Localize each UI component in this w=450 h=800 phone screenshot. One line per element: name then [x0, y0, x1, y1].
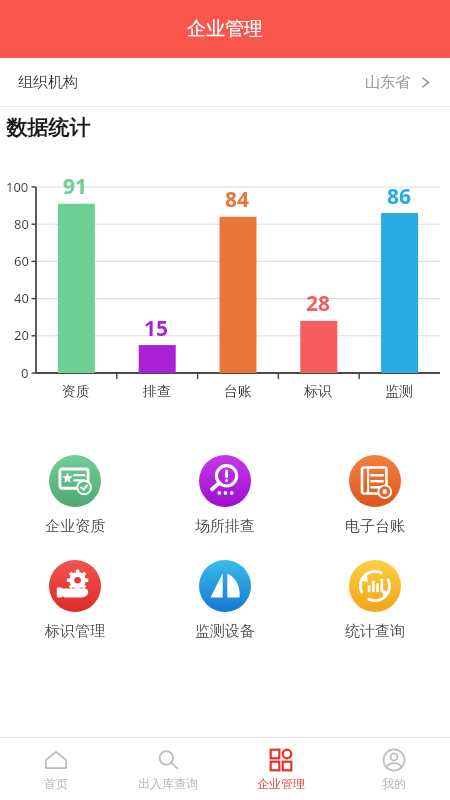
- button[interactable]: 企业资质: [0, 455, 150, 536]
- other: 出入库查询: [156, 748, 180, 772]
- staticText: 0: [21, 364, 29, 382]
- other: 首页: [44, 748, 68, 772]
- staticText: 企业资质: [45, 517, 105, 536]
- staticText: 监测设备: [195, 622, 255, 641]
- staticText: 84: [225, 185, 250, 214]
- staticText: 山东省: [365, 73, 410, 92]
- button[interactable]: 场所排查: [150, 455, 300, 536]
- staticText: 组织机构: [18, 73, 78, 92]
- staticText: 86: [387, 182, 412, 211]
- staticText: 15: [144, 314, 169, 343]
- button[interactable]: 组织机构: [0, 58, 450, 106]
- other: 标识管理: [49, 560, 101, 612]
- other: 企业管理: [269, 748, 293, 772]
- staticText: 91: [63, 172, 88, 201]
- button[interactable]: 企业管理: [224, 738, 337, 800]
- staticText: 企业管理: [187, 17, 263, 41]
- other: 监测设备: [199, 560, 251, 612]
- staticText: 统计查询: [345, 622, 405, 641]
- staticText: 我的: [382, 776, 406, 791]
- button[interactable]: 首页: [0, 738, 112, 800]
- staticText: 标识管理: [45, 622, 105, 641]
- staticText: 企业管理: [257, 776, 305, 791]
- staticText: 100: [6, 178, 29, 196]
- staticText: 80: [14, 215, 29, 233]
- staticText: 资质: [62, 383, 90, 401]
- staticText: 首页: [44, 776, 68, 791]
- button[interactable]: 出入库查询: [112, 738, 224, 800]
- other: 电子台账: [349, 455, 401, 507]
- other: 场所排查: [199, 455, 251, 507]
- button[interactable]: 标识管理: [0, 560, 150, 641]
- other: 我的: [382, 748, 406, 772]
- button[interactable]: 统计查询: [300, 560, 450, 641]
- button[interactable]: 电子台账: [300, 455, 450, 536]
- staticText: 数据统计: [6, 115, 90, 141]
- staticText: 排查: [143, 383, 171, 401]
- staticText: 台账: [224, 383, 252, 401]
- staticText: 监测: [385, 383, 413, 401]
- button[interactable]: 我的: [337, 738, 450, 800]
- staticText: 标识: [304, 383, 332, 401]
- staticText: 20: [14, 326, 29, 344]
- button[interactable]: 监测设备: [150, 560, 300, 641]
- staticText: 40: [14, 289, 29, 307]
- other: 统计查询: [349, 560, 401, 612]
- staticText: 出入库查询: [138, 776, 198, 791]
- staticText: 60: [14, 252, 29, 270]
- staticText: 电子台账: [345, 517, 405, 536]
- staticText: 28: [306, 289, 331, 318]
- staticText: 场所排查: [195, 517, 255, 536]
- other: 企业资质: [49, 455, 101, 507]
